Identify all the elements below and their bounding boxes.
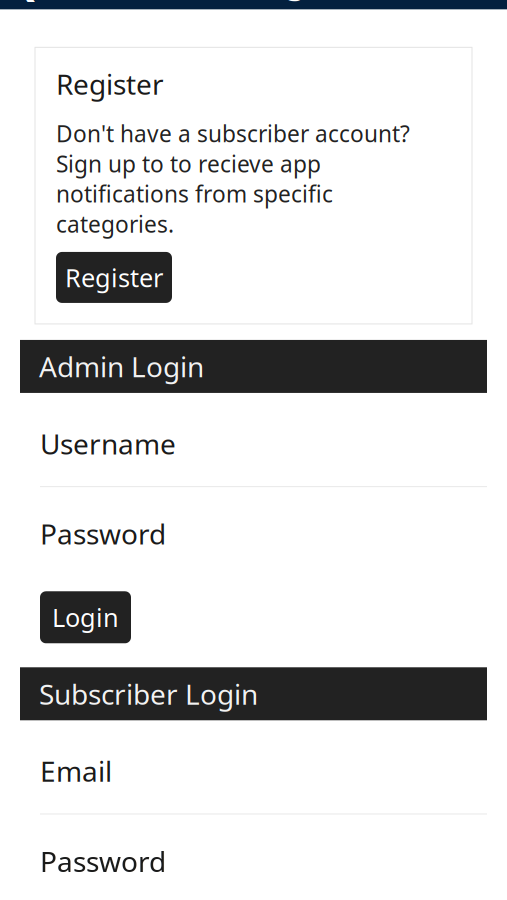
button[interactable]: Login [40, 591, 131, 643]
staticText: Register [56, 65, 164, 102]
staticText: Password [40, 842, 166, 880]
staticText: Admin Login [39, 348, 204, 385]
button[interactable]: ❮ [0, 0, 126, 9]
staticText: Subscriber Login [39, 675, 258, 712]
button[interactable]: Register [56, 252, 172, 303]
staticText: Don't have a subscriber account? Sign up… [56, 118, 410, 239]
staticText: ❮ [12, 0, 40, 1]
staticText: Login [52, 600, 119, 634]
staticText: User Login [173, 0, 334, 3]
staticText: Register [65, 261, 163, 294]
staticText: Username [40, 425, 176, 462]
staticText: Email [40, 752, 112, 789]
staticText: Password [40, 515, 166, 552]
